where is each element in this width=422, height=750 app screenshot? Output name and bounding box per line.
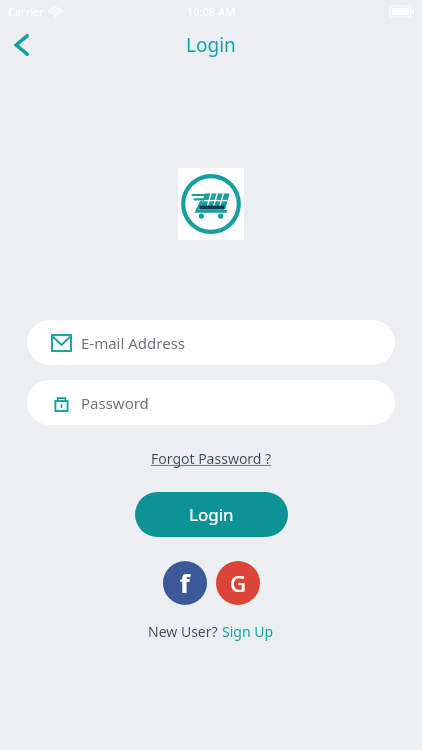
staticText: 10:08 AM xyxy=(187,4,236,19)
button[interactable]: Sign in with Google xyxy=(216,561,260,605)
button[interactable]: Back xyxy=(0,23,44,67)
staticText: New User? xyxy=(148,622,222,641)
staticText: f xyxy=(180,566,190,600)
button[interactable]: Sign in with Facebook xyxy=(163,561,207,605)
staticText: E-mail Address xyxy=(81,333,186,353)
button[interactable]: Login xyxy=(135,492,288,537)
staticText: Forgot Password ? xyxy=(151,449,272,468)
button[interactable]: Forgot Password ? xyxy=(147,447,276,470)
button[interactable]: E-mail Address xyxy=(27,320,395,365)
staticText: Login xyxy=(189,503,234,526)
button[interactable]: Password xyxy=(27,380,395,425)
staticText: G xyxy=(230,568,246,598)
staticText: Password xyxy=(81,393,149,413)
button[interactable]: Sign Up xyxy=(222,622,274,641)
staticText: Login xyxy=(186,32,236,58)
staticText: Carrier xyxy=(8,4,44,19)
staticText: Sign Up xyxy=(222,622,274,641)
